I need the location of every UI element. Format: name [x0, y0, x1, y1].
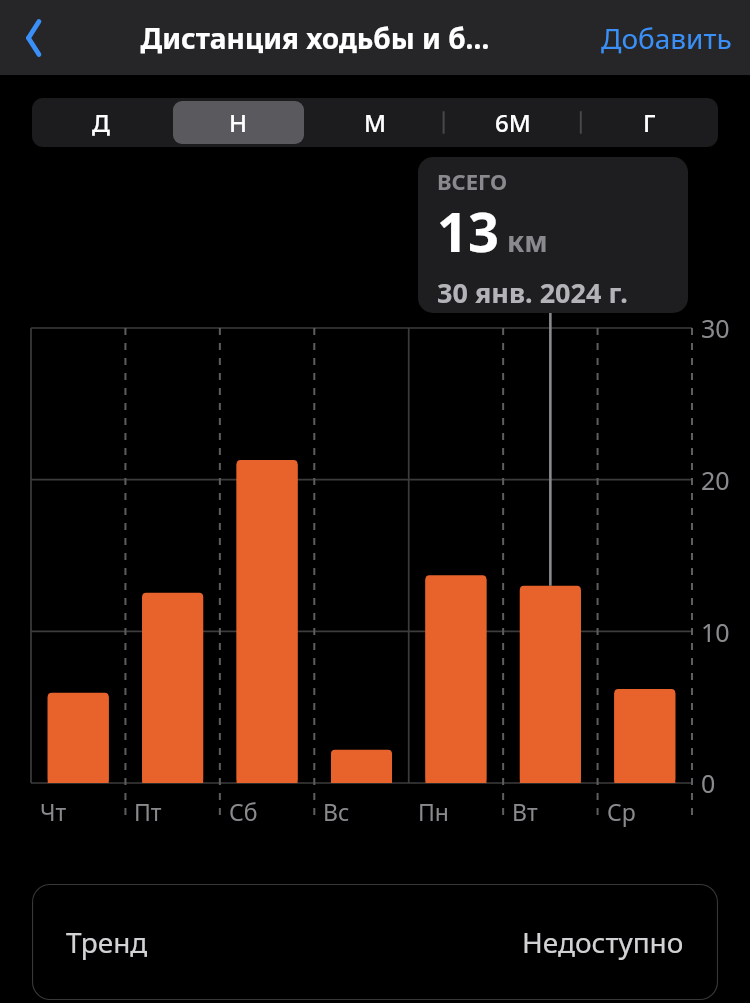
button[interactable]: Тренд [32, 884, 718, 1000]
staticText: 30 янв. 2024 г. [437, 274, 628, 311]
button[interactable]: Добавить [583, 9, 750, 67]
button[interactable]: Назад [4, 11, 58, 65]
button[interactable]: 6М [447, 101, 578, 144]
staticText: ВСЕГО [437, 166, 508, 196]
staticText: Чт [40, 796, 67, 827]
staticText: Пн [418, 796, 449, 827]
staticText: Н [229, 106, 248, 139]
staticText: 13 [437, 194, 499, 268]
staticText: Пт [134, 796, 162, 827]
staticText: Добавить [601, 19, 732, 57]
button[interactable]: Г [584, 101, 715, 144]
button[interactable]: М [310, 101, 441, 144]
staticText: Дистанция ходьбы и б… [80, 19, 550, 57]
staticText: 30 [701, 311, 730, 345]
staticText: 0 [701, 766, 716, 800]
button[interactable]: Н [173, 101, 304, 144]
staticText: Д [92, 106, 110, 139]
button[interactable]: Д [35, 101, 167, 144]
staticText: Сб [229, 796, 258, 827]
staticText: Недоступно [522, 923, 684, 961]
staticText: Ср [607, 796, 636, 827]
staticText: Вс [323, 796, 350, 827]
staticText: км [507, 222, 548, 260]
staticText: Г [643, 106, 656, 139]
staticText: 10 [701, 615, 730, 649]
staticText: 20 [701, 463, 730, 497]
staticText: 6М [495, 106, 531, 139]
staticText: М [364, 106, 387, 139]
staticText: Вт [512, 796, 538, 827]
staticText: Тренд [66, 923, 148, 961]
